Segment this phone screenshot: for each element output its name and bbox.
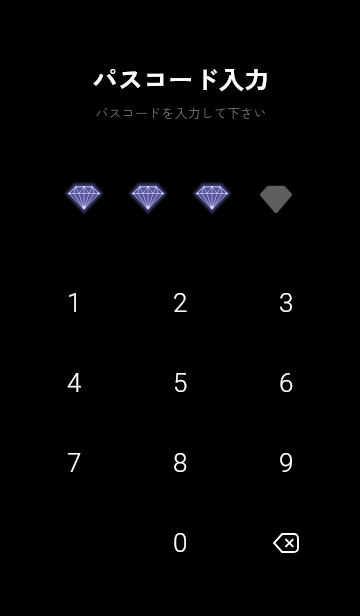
button[interactable]: 8 bbox=[127, 423, 233, 503]
button[interactable]: 9 bbox=[233, 423, 339, 503]
button[interactable]: 1 bbox=[21, 263, 127, 343]
button[interactable]: 0 bbox=[127, 503, 233, 583]
button[interactable]: 5 bbox=[127, 343, 233, 423]
button[interactable]: 3 bbox=[233, 263, 339, 343]
staticText: 5 bbox=[173, 368, 188, 398]
button[interactable]: 2 bbox=[127, 263, 233, 343]
staticText: 3 bbox=[279, 288, 294, 318]
staticText: 2 bbox=[173, 288, 188, 318]
button[interactable]: 7 bbox=[21, 423, 127, 503]
staticText: 0 bbox=[173, 528, 188, 558]
staticText: 6 bbox=[279, 368, 294, 398]
button[interactable]: Delete bbox=[233, 503, 339, 583]
staticText: パスコード入力 bbox=[92, 60, 270, 96]
staticText: 9 bbox=[279, 448, 294, 478]
button[interactable]: 4 bbox=[21, 343, 127, 423]
staticText: 7 bbox=[67, 448, 82, 478]
staticText: 8 bbox=[173, 448, 188, 478]
staticText: 4 bbox=[67, 368, 82, 398]
button[interactable]: 6 bbox=[233, 343, 339, 423]
staticText: パスコードを入力して下さい bbox=[95, 103, 267, 122]
staticText: 1 bbox=[67, 288, 82, 318]
